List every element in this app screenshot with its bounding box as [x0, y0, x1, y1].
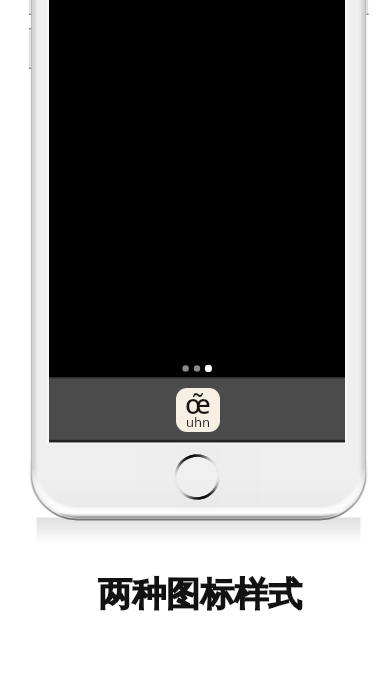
staticText: 两种图标样式 [98, 573, 302, 616]
button[interactable]: 两种图标样式 [4, 573, 392, 616]
button[interactable]: uhn app [176, 388, 220, 432]
staticText: œ̃ [185, 388, 211, 422]
staticText: uhn [186, 413, 211, 431]
